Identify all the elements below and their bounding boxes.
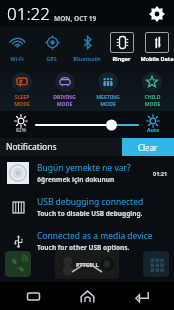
staticText: 01:22 bbox=[7, 2, 50, 25]
staticText: Connected as a media device bbox=[37, 230, 153, 242]
staticText: MON, OCT 19 bbox=[54, 14, 97, 23]
button[interactable]: Home bbox=[65, 282, 109, 310]
staticText: MEETING MODE bbox=[96, 93, 120, 107]
staticText: CHILD MODE bbox=[144, 93, 161, 107]
button[interactable]: App shortcut bbox=[5, 251, 31, 277]
button[interactable]: Back bbox=[120, 282, 164, 310]
button[interactable]: Auto brightness bbox=[138, 115, 168, 134]
staticText: 01:21 bbox=[153, 170, 168, 177]
button[interactable]: CHILD MODE bbox=[130, 67, 174, 111]
staticText: Wi-Fi bbox=[10, 55, 24, 62]
staticText: Auto bbox=[147, 127, 160, 134]
staticText: GPS bbox=[46, 55, 57, 62]
staticText: Touch to disable USB debugging. bbox=[37, 209, 143, 218]
staticText: Bugün yemekte ne var? bbox=[37, 162, 131, 174]
button[interactable]: DRIVING MODE bbox=[43, 67, 86, 111]
button[interactable]: Wi-Fi bbox=[0, 27, 34, 67]
button[interactable]: Brightness slider bbox=[36, 111, 138, 138]
button[interactable]: GPS bbox=[34, 27, 69, 67]
button[interactable]: Ringer bbox=[104, 27, 139, 67]
button[interactable]: Bugün yemekte ne var? bbox=[0, 156, 174, 190]
staticText: Bluetooth bbox=[73, 55, 101, 62]
button[interactable]: USB debugging connected bbox=[0, 190, 174, 224]
button[interactable]: SLEEP MODE bbox=[0, 67, 43, 111]
staticText: Touch for other USB options. bbox=[37, 243, 130, 252]
staticText: Ringer bbox=[112, 55, 131, 62]
button[interactable]: Recent apps bbox=[11, 282, 55, 310]
button[interactable]: Settings bbox=[147, 4, 167, 24]
button[interactable]: Bluetooth bbox=[69, 27, 104, 67]
staticText: Clear bbox=[138, 142, 158, 153]
staticText: USB debugging connected bbox=[37, 196, 144, 208]
button[interactable]: Connected as a media device bbox=[0, 224, 174, 258]
button[interactable]: Clear bbox=[122, 138, 174, 156]
staticText: Notifications bbox=[6, 141, 122, 153]
button[interactable]: App shortcut bbox=[143, 251, 169, 277]
staticText: Mobile Data bbox=[140, 55, 174, 62]
staticText: PTTCELL bbox=[76, 261, 99, 268]
staticText: 82% bbox=[16, 127, 27, 134]
button[interactable]: Brightness level bbox=[6, 115, 36, 134]
staticText: SLEEP MODE bbox=[14, 93, 30, 107]
button[interactable]: Mobile Data bbox=[139, 27, 174, 67]
staticText: öğrenmek için dokunun bbox=[37, 175, 115, 184]
button[interactable]: MEETING MODE bbox=[86, 67, 130, 111]
staticText: DRIVING MODE bbox=[53, 93, 76, 107]
